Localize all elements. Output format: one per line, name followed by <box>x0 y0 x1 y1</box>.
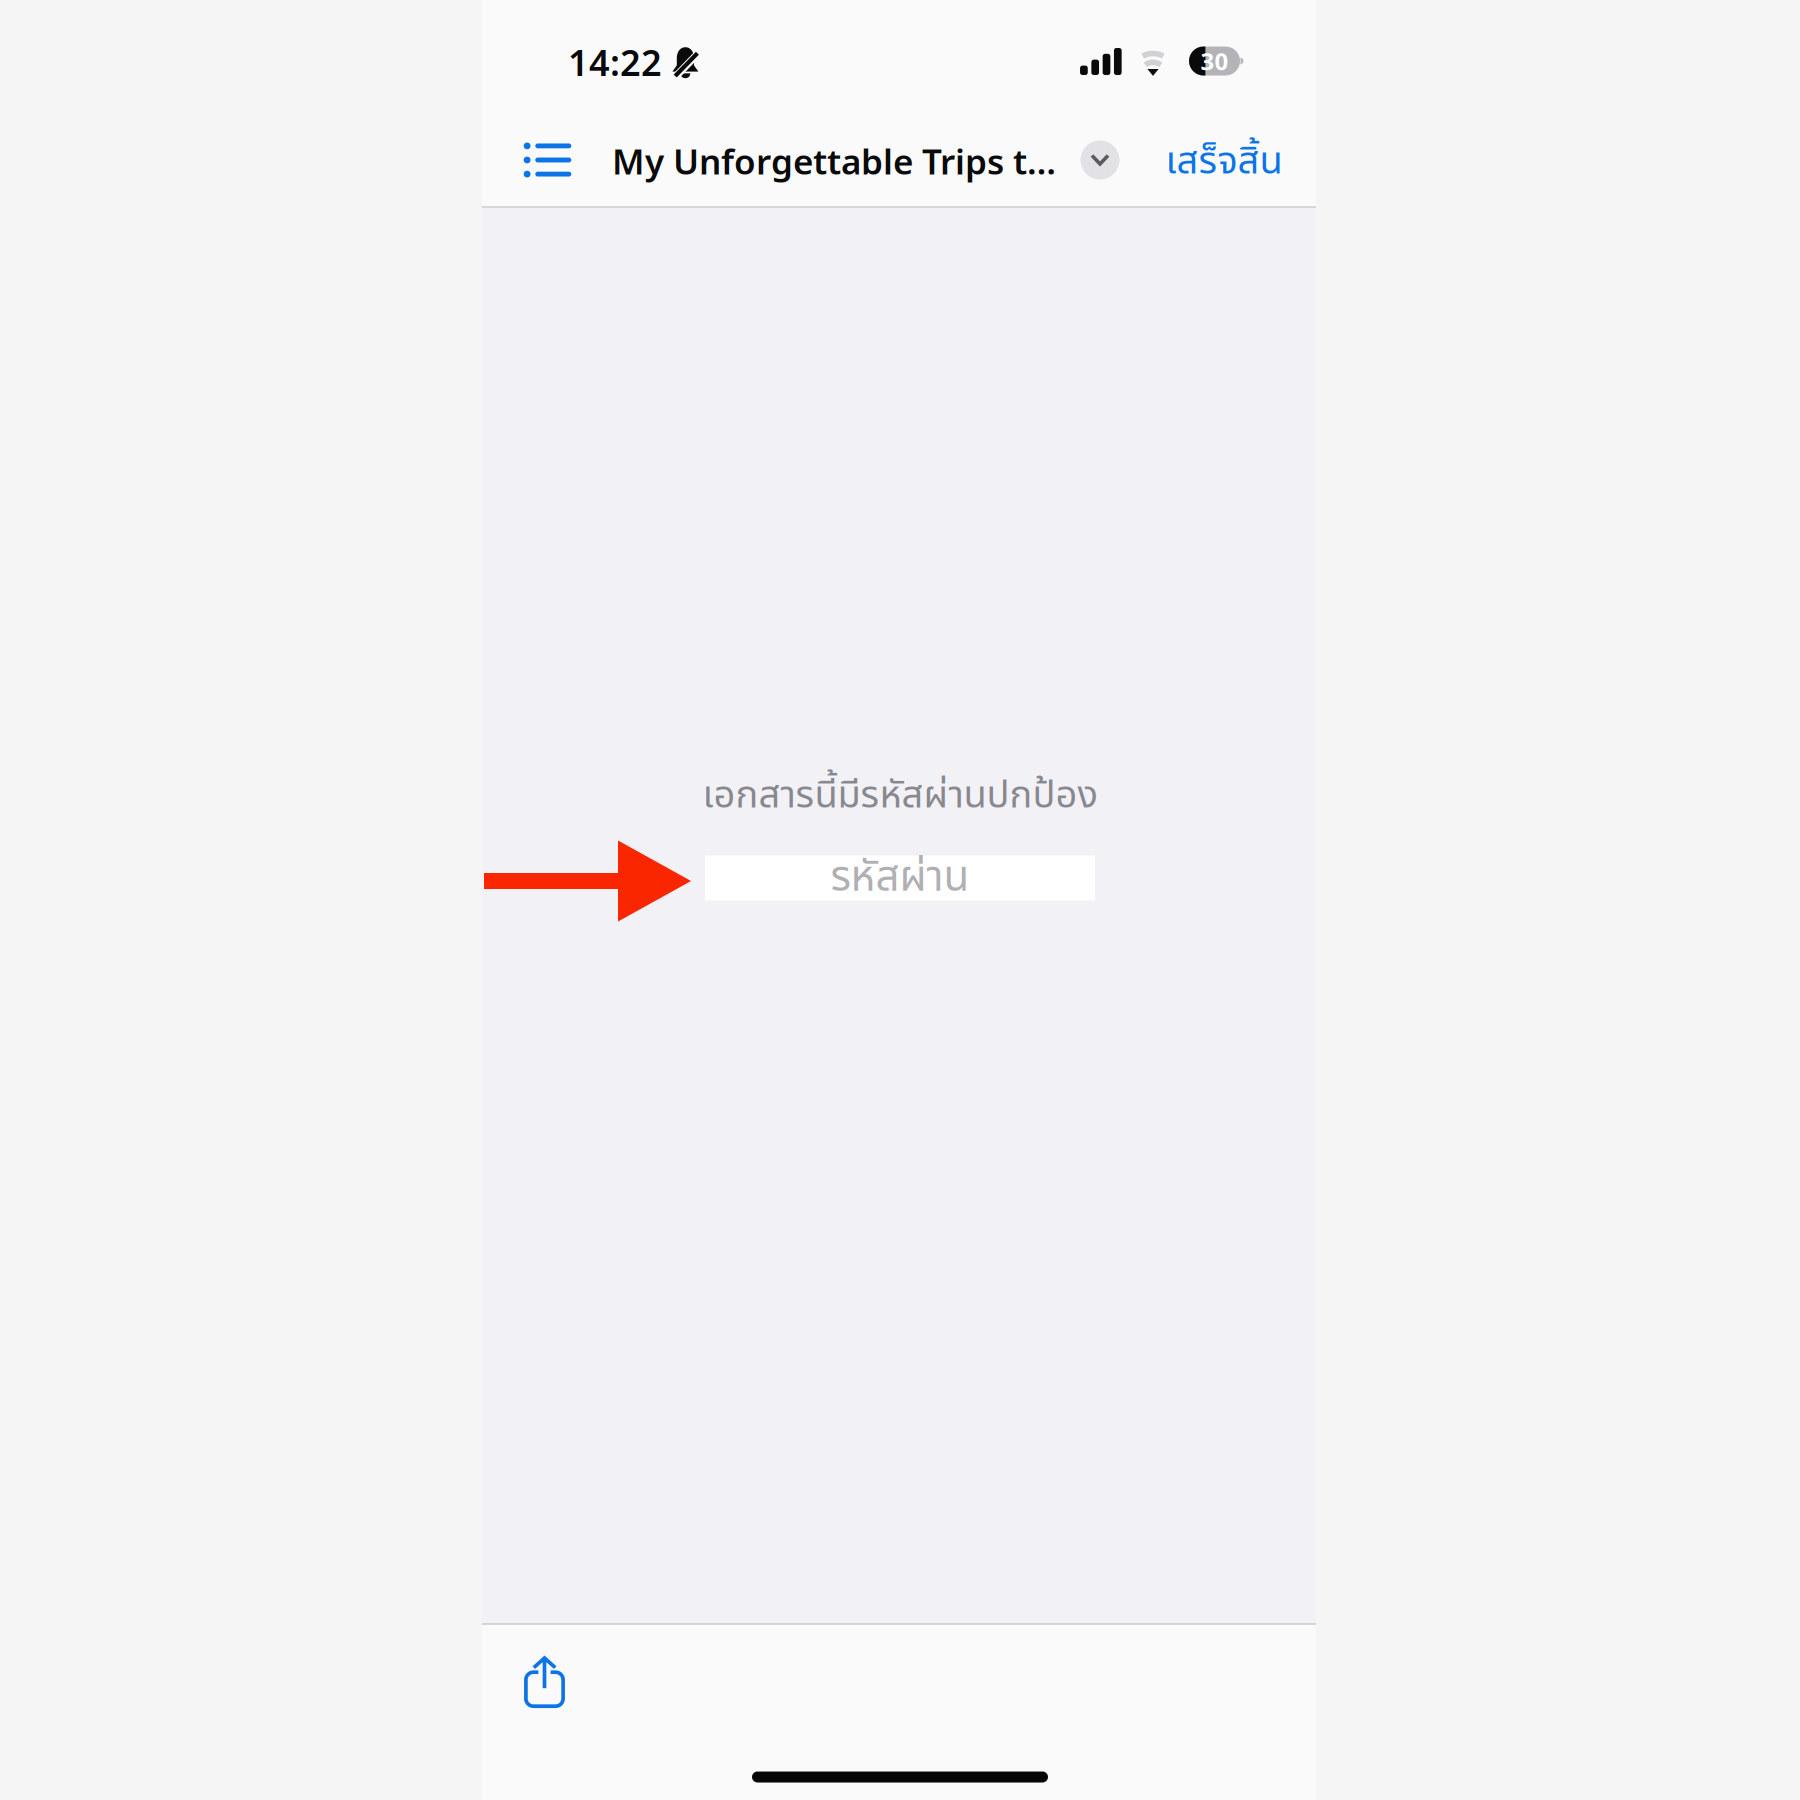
button[interactable]: Document outline <box>506 125 589 195</box>
button[interactable]: Document options <box>1070 130 1129 189</box>
staticText: เอกสารนี้มีรหัสผ่านปกป้อง <box>702 767 1097 825</box>
staticText: เสร็จสิ้น <box>1165 133 1282 191</box>
button[interactable]: เสร็จสิ้น <box>1151 121 1296 203</box>
staticText: 14:22 <box>568 37 662 86</box>
staticText: My Unforgettable Trips t… <box>612 137 1056 185</box>
staticText: รหัสผ่าน <box>830 846 969 910</box>
staticText: 30 <box>1200 45 1228 77</box>
button[interactable]: Share <box>508 1640 581 1724</box>
